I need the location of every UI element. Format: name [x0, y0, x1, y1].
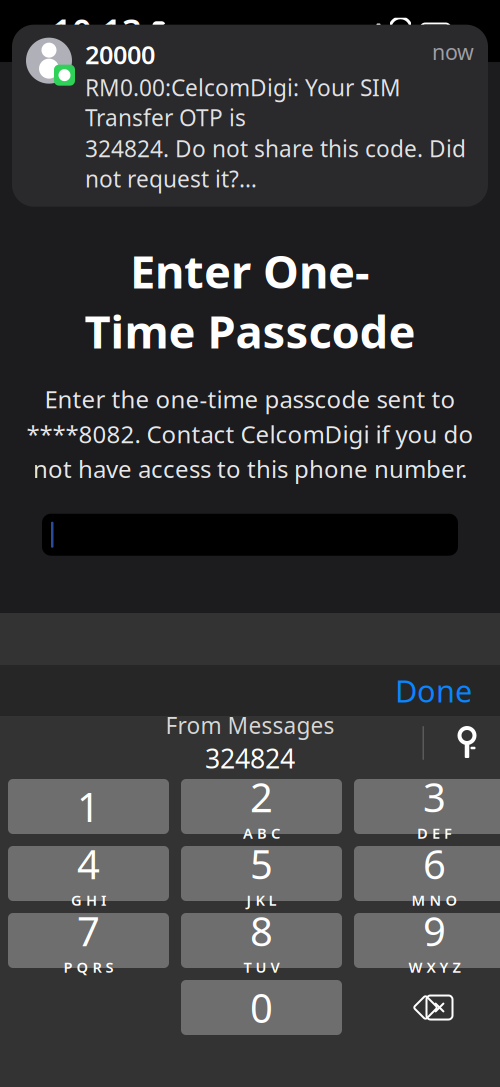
staticText: D E F [417, 823, 452, 843]
staticText: 7 [77, 904, 100, 957]
staticText: not have access to this phone number. [33, 453, 467, 485]
staticText: P Q R S [63, 957, 113, 977]
staticText: Enter One- [130, 241, 370, 301]
button[interactable]: 0 [181, 980, 342, 1035]
button[interactable]: 7 [8, 913, 169, 968]
staticText: 2 [250, 770, 273, 823]
button[interactable]: 6 [354, 846, 500, 901]
staticText: 6 [423, 837, 446, 890]
button[interactable]: 3 [354, 779, 500, 834]
staticText: Time Passcode [84, 301, 415, 361]
staticText: A B C [243, 823, 280, 843]
staticText: ****8082. Contact CelcomDigi if you do [26, 418, 473, 450]
staticText: RM0.00:CelcomDigi: Your SIM Transfer OTP… [85, 72, 401, 132]
staticText: Done [395, 670, 472, 711]
button[interactable]: Delete [354, 980, 500, 1035]
button[interactable]: From Messages [145, 706, 354, 780]
staticText: 324824. Do not share this code. Did not … [85, 133, 466, 194]
button[interactable]: 4 [8, 846, 169, 901]
button[interactable]: 8 [181, 913, 342, 968]
staticText: J K L [246, 890, 276, 910]
staticText: 1 [77, 780, 100, 833]
staticText: 0 [250, 981, 273, 1034]
staticText: 20000 [85, 38, 155, 71]
staticText: 324824 [205, 740, 295, 776]
staticText: Resend Passcode [144, 608, 356, 641]
button[interactable]: 9 [354, 913, 500, 968]
button[interactable]: Passwords [446, 722, 488, 764]
staticText: 4 [77, 837, 100, 890]
staticText: 8 [250, 904, 273, 957]
button[interactable]: 2 [181, 779, 342, 834]
staticText: M N O [411, 890, 457, 910]
staticText: now [432, 38, 474, 66]
staticText: 5 [250, 837, 273, 890]
staticText: T U V [243, 957, 279, 977]
staticText: 3 [423, 770, 446, 823]
button[interactable]: Resend Passcode [128, 600, 372, 649]
staticText: 9 [423, 904, 446, 957]
staticText: 10:13 [52, 8, 142, 54]
button[interactable]: Done [381, 664, 486, 717]
button[interactable]: 1 [8, 779, 169, 834]
staticText: From Messages [165, 710, 334, 740]
button[interactable]: Message from 20000 [12, 25, 488, 207]
staticText: W X Y Z [408, 957, 460, 977]
staticText: Enter the one-time passcode sent to [44, 383, 455, 415]
staticText: G H I [71, 890, 106, 910]
button[interactable]: 5 [181, 846, 342, 901]
